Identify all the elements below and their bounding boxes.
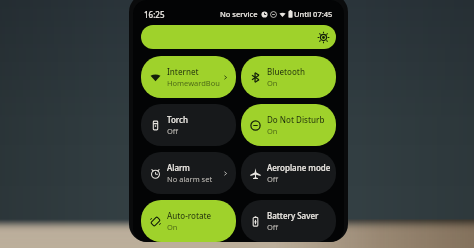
button[interactable]: Alarm — [141, 152, 236, 194]
button[interactable]: Battery Saver — [241, 200, 336, 242]
staticText: Aeroplane mode — [267, 162, 331, 173]
button[interactable]: Torch — [141, 104, 236, 146]
button[interactable]: Bluetooth — [241, 56, 336, 98]
button[interactable]: Aeroplane mode — [241, 152, 336, 194]
staticText: No service — [220, 9, 258, 19]
button[interactable]: Internet — [141, 56, 236, 98]
staticText: Bluetooth — [267, 66, 305, 77]
staticText: Alarm — [167, 162, 190, 173]
staticText: Off — [267, 222, 279, 232]
staticText: Torch — [167, 114, 188, 125]
staticText: 16:25 — [144, 9, 165, 20]
staticText: Off — [267, 174, 279, 184]
button[interactable]: Auto-rotate — [141, 200, 236, 242]
staticText: On — [267, 78, 278, 88]
staticText: Until 07:45 — [294, 9, 333, 19]
staticText: Off — [167, 126, 179, 136]
button[interactable]: Brightness — [141, 25, 336, 49]
staticText: On — [167, 222, 178, 232]
button[interactable]: Do Not Disturb — [241, 104, 336, 146]
staticText: Internet — [167, 66, 199, 77]
staticText: Battery Saver — [267, 210, 319, 221]
staticText: Do Not Disturb — [267, 114, 325, 125]
staticText: On — [267, 126, 278, 136]
staticText: Auto-rotate — [167, 210, 212, 221]
staticText: No alarm set — [167, 174, 213, 184]
staticText: HomewardBou — [167, 78, 220, 88]
